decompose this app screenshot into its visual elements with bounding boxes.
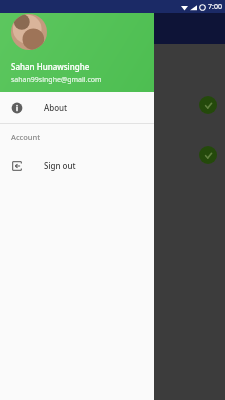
staticText: Sign out [44,160,76,171]
staticText: 7:00 [208,2,222,12]
staticText: About [44,102,68,113]
button[interactable]: About [0,92,154,123]
staticText: sahan99singhe@gmail.com [11,75,102,85]
button[interactable]: Completed [199,96,217,114]
staticText: AT SENSING [9,58,45,66]
button[interactable]: Sign out [0,150,154,181]
button[interactable]: Completed [199,146,217,164]
staticText: Sahan Hunawsinghe [11,61,90,72]
staticText: Account [11,132,41,142]
